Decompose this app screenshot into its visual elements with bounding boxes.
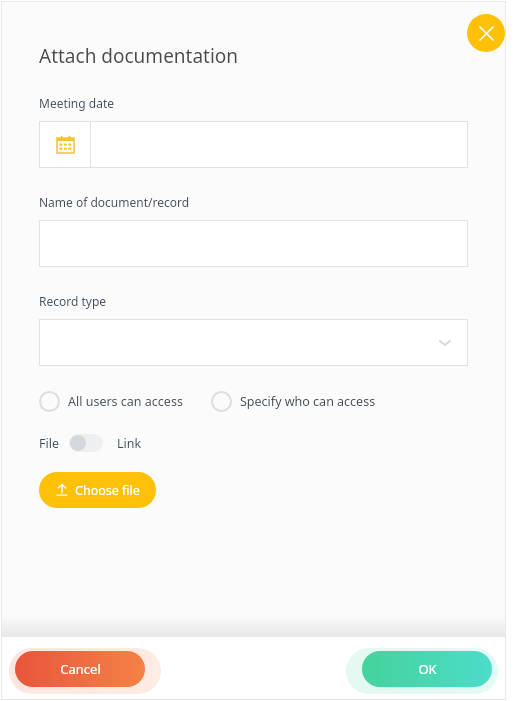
button[interactable]: OK — [362, 651, 492, 687]
staticText: Meeting date — [39, 95, 114, 111]
button[interactable]: Close — [467, 14, 505, 52]
staticText: Cancel — [60, 660, 101, 678]
button[interactable] — [39, 121, 468, 168]
staticText: File — [39, 435, 59, 452]
button[interactable]: Specify who can access — [211, 391, 376, 412]
staticText: Attach documentation — [39, 43, 239, 69]
staticText: OK — [418, 660, 437, 678]
button[interactable]: Cancel — [15, 651, 145, 687]
button[interactable] — [39, 220, 468, 267]
button[interactable]: All users can access — [39, 391, 183, 412]
button[interactable] — [39, 319, 468, 366]
staticText: Name of document/record — [39, 194, 190, 210]
staticText: Specify who can access — [240, 393, 376, 410]
button[interactable]: File or Link toggle — [69, 434, 103, 452]
staticText: Record type — [39, 293, 107, 309]
button[interactable]: Choose file — [39, 472, 156, 508]
staticText: All users can access — [68, 393, 183, 410]
staticText: Link — [117, 435, 142, 452]
staticText: Choose file — [75, 482, 140, 499]
